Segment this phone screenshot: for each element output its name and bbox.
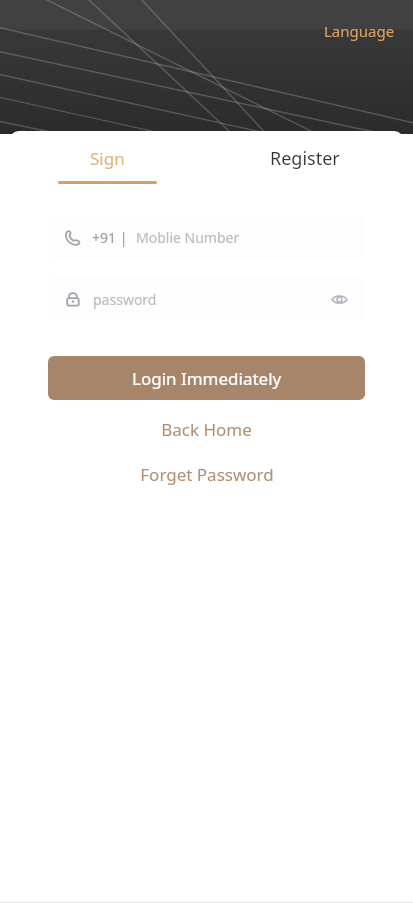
staticText: Forget Password bbox=[140, 463, 274, 486]
staticText: Moblie Number bbox=[136, 228, 240, 247]
staticText: Register bbox=[270, 146, 340, 171]
staticText: Language bbox=[324, 21, 395, 41]
button[interactable]: Back Home bbox=[9, 412, 404, 446]
staticText: Back Home bbox=[161, 418, 252, 441]
button[interactable]: Login Immediately bbox=[48, 356, 365, 400]
staticText: password bbox=[93, 290, 327, 309]
button[interactable]: password bbox=[48, 277, 365, 321]
button[interactable]: Sign bbox=[9, 131, 206, 187]
button[interactable]: +91 | bbox=[48, 215, 365, 259]
button[interactable]: Show password bbox=[327, 287, 351, 311]
button[interactable]: Register bbox=[206, 131, 404, 187]
staticText: Login Immediately bbox=[132, 367, 282, 390]
staticText: Sign bbox=[90, 147, 125, 170]
button[interactable]: Language bbox=[318, 18, 401, 44]
staticText: +91 | bbox=[92, 228, 128, 247]
button[interactable]: Forget Password bbox=[9, 457, 404, 491]
